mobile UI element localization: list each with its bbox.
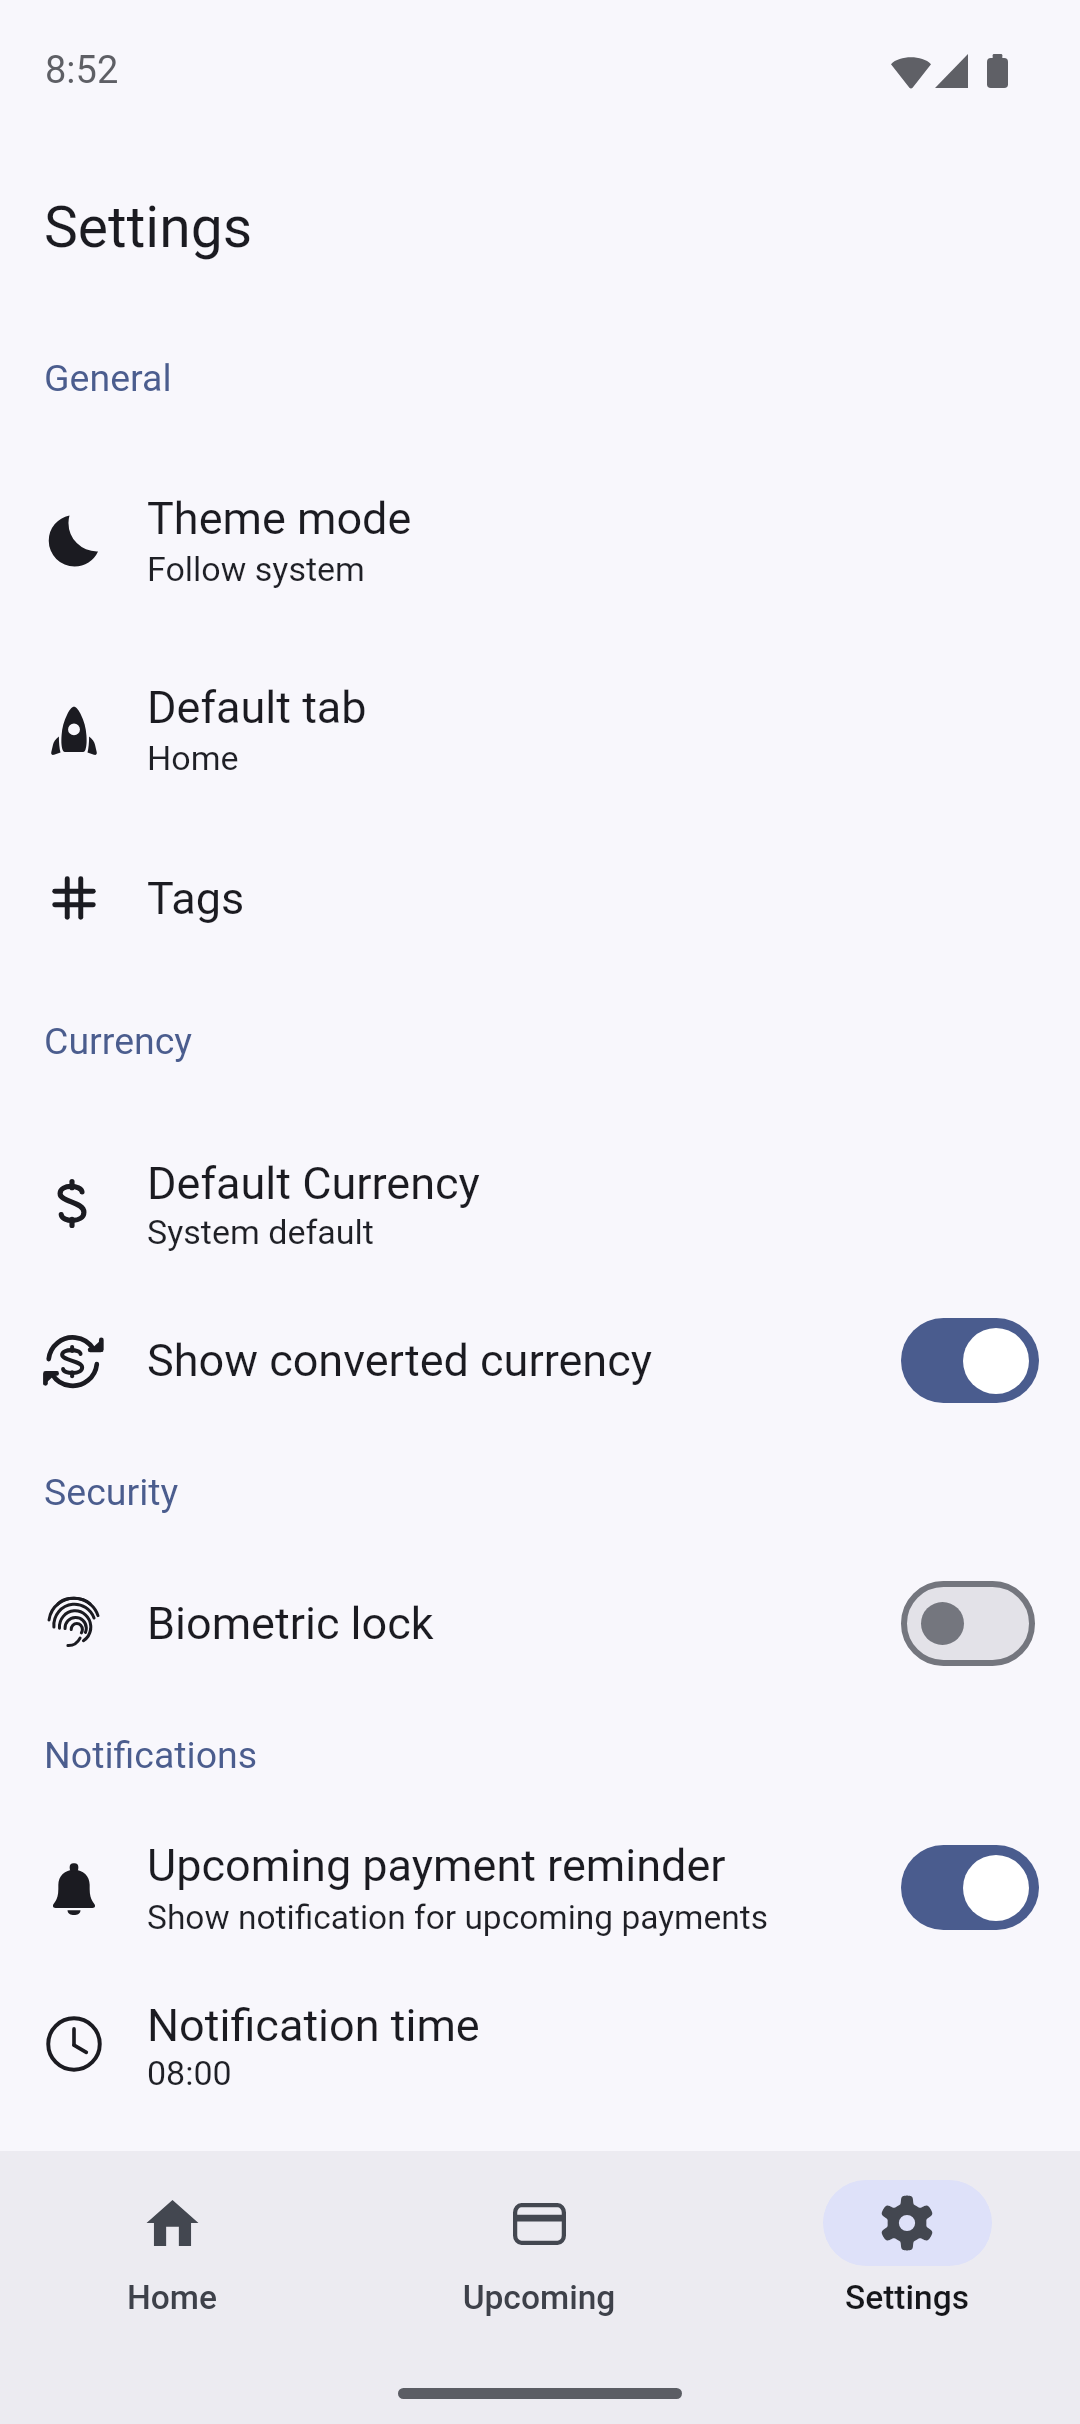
staticText: Tags	[147, 872, 245, 925]
staticText: Show converted currency	[147, 1334, 653, 1387]
other: Home	[146, 2199, 199, 2247]
button[interactable]: Upcoming	[449, 2151, 629, 2331]
staticText: 8:52	[45, 48, 119, 93]
button[interactable]: Upcoming payment reminder	[0, 1815, 1080, 1963]
button[interactable]: Show converted currency	[0, 1300, 1080, 1420]
staticText: Upcoming payment reminder	[147, 1839, 726, 1892]
button[interactable]: Toggle on	[901, 1318, 1039, 1403]
staticText: Default tab	[147, 681, 367, 734]
button[interactable]: Theme mode, Follow system	[0, 464, 1080, 612]
staticText: System default	[147, 1212, 374, 1252]
other: Upcoming	[513, 2203, 566, 2245]
staticText: Biometric lock	[147, 1597, 434, 1650]
staticText: Notifications	[44, 1733, 258, 1777]
staticText: Follow system	[147, 549, 365, 589]
button[interactable]: Notification time, 08:00	[0, 1971, 1080, 2119]
button[interactable]: Toggle off	[901, 1581, 1035, 1666]
staticText: Home	[147, 738, 239, 778]
button[interactable]: Biometric lock	[0, 1563, 1080, 1683]
staticText: 08:00	[147, 2053, 232, 2093]
staticText: Settings	[817, 2278, 997, 2317]
button[interactable]: Settings	[817, 2151, 997, 2331]
staticText: Settings	[44, 194, 253, 261]
button[interactable]: Default tab, Home	[0, 648, 1080, 796]
staticText: Show notification for upcoming payments	[147, 1898, 768, 1937]
staticText: Home	[82, 2278, 262, 2317]
other: Settings	[879, 2195, 935, 2251]
button[interactable]: Default Currency, System default	[0, 1129, 1080, 1277]
staticText: General	[44, 356, 172, 400]
staticText: Default Currency	[147, 1157, 480, 1210]
button[interactable]: Toggle on	[901, 1845, 1039, 1930]
staticText: Upcoming	[449, 2278, 629, 2317]
staticText: Currency	[44, 1019, 193, 1063]
staticText: Theme mode	[147, 492, 412, 545]
button[interactable]: Home	[82, 2151, 262, 2331]
staticText: Security	[44, 1470, 179, 1514]
button[interactable]: Tags	[0, 838, 1080, 958]
staticText: Notification time	[147, 1999, 480, 2052]
